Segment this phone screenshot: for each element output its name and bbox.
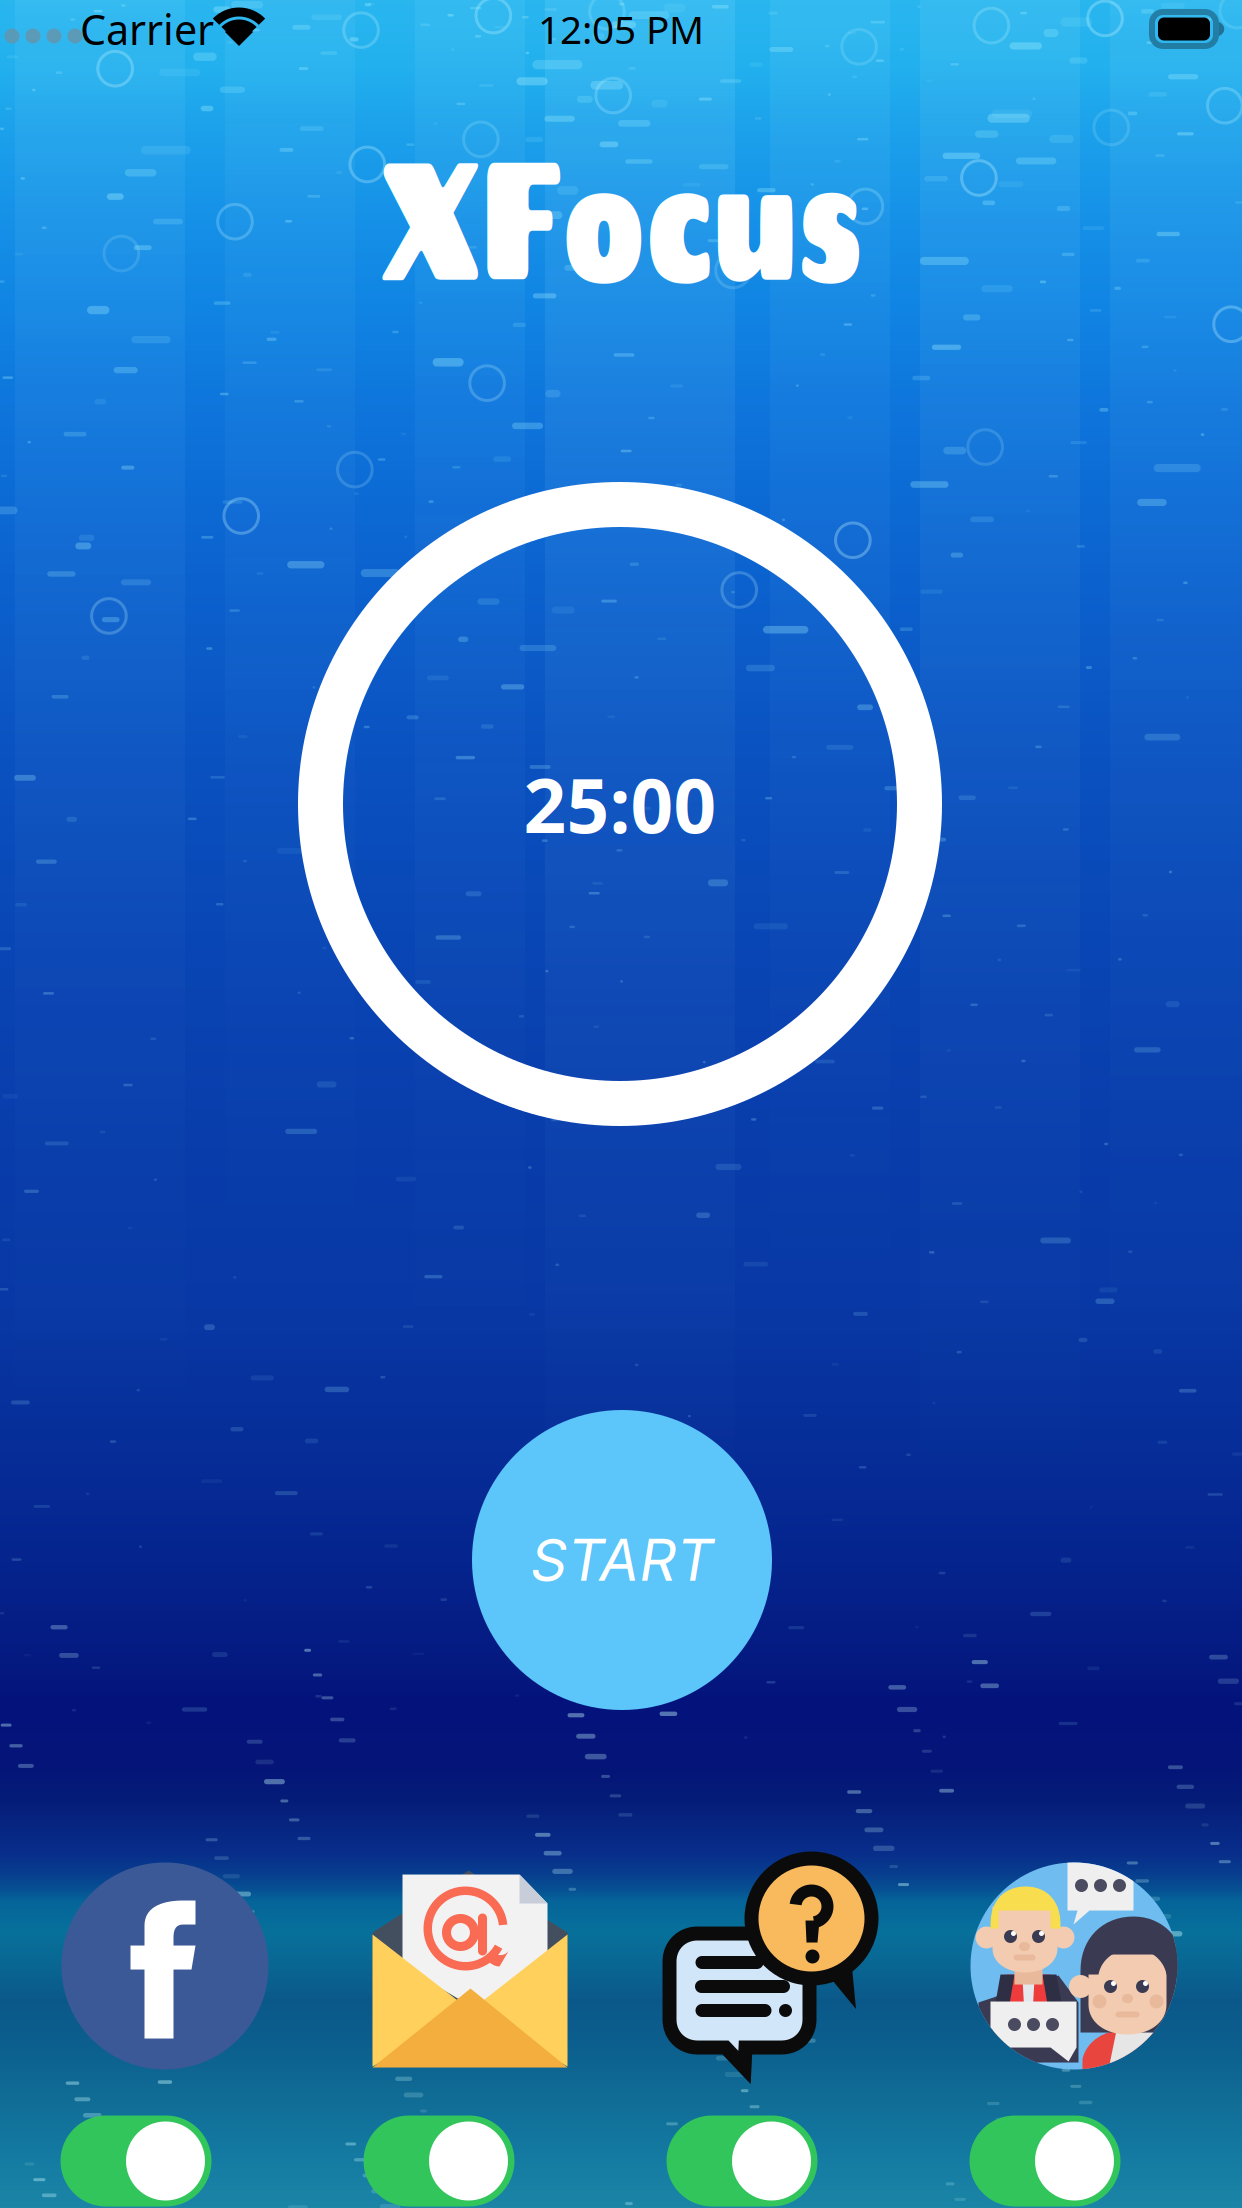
button[interactable]: START [472,1410,772,1710]
button[interactable]: Blocking toggle [363,2115,514,2206]
staticText: 25:00 [523,754,716,854]
button[interactable]: Messages [667,1862,874,2069]
button[interactable]: Blocking toggle [60,2115,211,2206]
staticText: Carrier [80,2,214,56]
button[interactable]: Email [364,1862,571,2069]
button[interactable]: Blocking toggle [969,2115,1120,2206]
staticText: XFocus [227,116,1015,313]
button[interactable]: Blocking toggle [666,2115,817,2206]
staticText: 12:05 PM [538,3,704,55]
button[interactable]: Social [970,1862,1177,2069]
staticText: START [530,1525,713,1595]
button[interactable]: Facebook [61,1862,268,2069]
